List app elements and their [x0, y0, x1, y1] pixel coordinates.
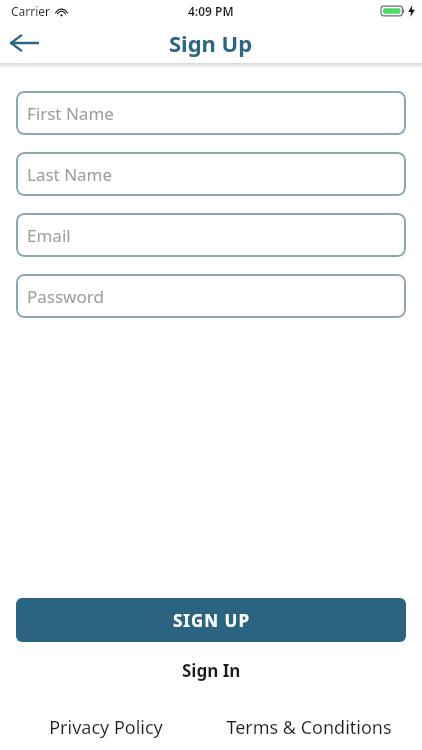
- button[interactable]: Email: [16, 213, 406, 257]
- button[interactable]: Back: [0, 22, 48, 63]
- button[interactable]: SIGN UP: [16, 598, 406, 642]
- staticText: Last Name: [27, 163, 113, 186]
- staticText: First Name: [27, 102, 114, 125]
- staticText: SIGN UP: [173, 609, 250, 632]
- staticText: Sign Up: [169, 28, 253, 58]
- staticText: 4:09 PM: [188, 3, 234, 19]
- button[interactable]: Password: [16, 274, 406, 318]
- button[interactable]: Privacy Policy: [18, 710, 194, 744]
- staticText: Privacy Policy: [49, 715, 163, 740]
- button[interactable]: Last Name: [16, 152, 406, 196]
- staticText: Terms & Conditions: [226, 715, 392, 740]
- staticText: Email: [27, 224, 71, 247]
- staticText: Carrier: [11, 3, 51, 19]
- staticText: Password: [27, 285, 104, 308]
- button[interactable]: Sign In: [0, 652, 422, 688]
- button[interactable]: Terms & Conditions: [214, 710, 404, 744]
- button[interactable]: First Name: [16, 91, 406, 135]
- staticText: Sign In: [182, 659, 241, 682]
